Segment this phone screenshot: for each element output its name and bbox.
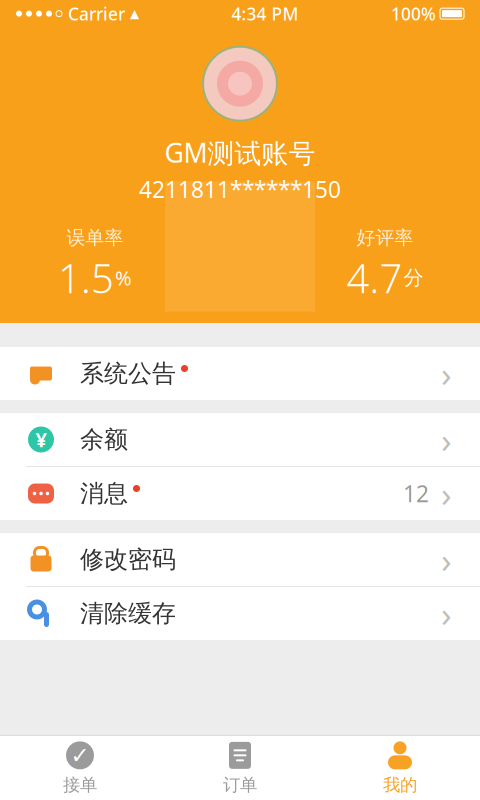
button[interactable]: 修改密码 [0,533,480,587]
staticText: ▲ [130,7,139,20]
staticText: 12 [403,478,429,508]
button[interactable]: 系统公告 [0,347,480,400]
staticText: 好评率 [356,226,413,249]
staticText: 消息 [80,479,128,508]
staticText: 分 [403,265,423,290]
staticText: 系统公告 [80,359,176,388]
staticText: 我的 [383,774,417,796]
staticText: 余额 [80,425,128,454]
staticText: % [115,264,132,291]
staticText: ¥ [35,426,46,453]
staticText: 4211811******150 [139,174,341,204]
staticText: › [441,416,452,462]
staticText: 修改密码 [80,545,176,574]
button[interactable]: 订单 [160,736,320,800]
staticText: 接单 [63,774,97,796]
staticText: › [441,350,452,396]
staticText: 误单率 [66,226,123,249]
staticText: 100% [391,2,436,25]
staticText: Carrier [68,2,125,25]
button[interactable]: 清除缓存 [0,587,480,640]
button[interactable]: 我的 [320,736,480,800]
staticText: › [441,590,452,636]
button[interactable]: ¥ [0,413,480,467]
staticText: 订单 [223,774,257,796]
staticText: 4:34 PM [231,2,298,25]
button[interactable]: ✓ [0,736,160,800]
staticText: › [441,470,452,516]
staticText: 清除缓存 [80,599,176,628]
staticText: 1.5 [58,251,114,304]
staticText: ✓ [70,742,89,768]
staticText: › [441,536,452,582]
button[interactable]: 消息 [0,467,480,520]
staticText: GM测试账号 [164,135,315,170]
staticText: 4.7 [346,251,402,304]
